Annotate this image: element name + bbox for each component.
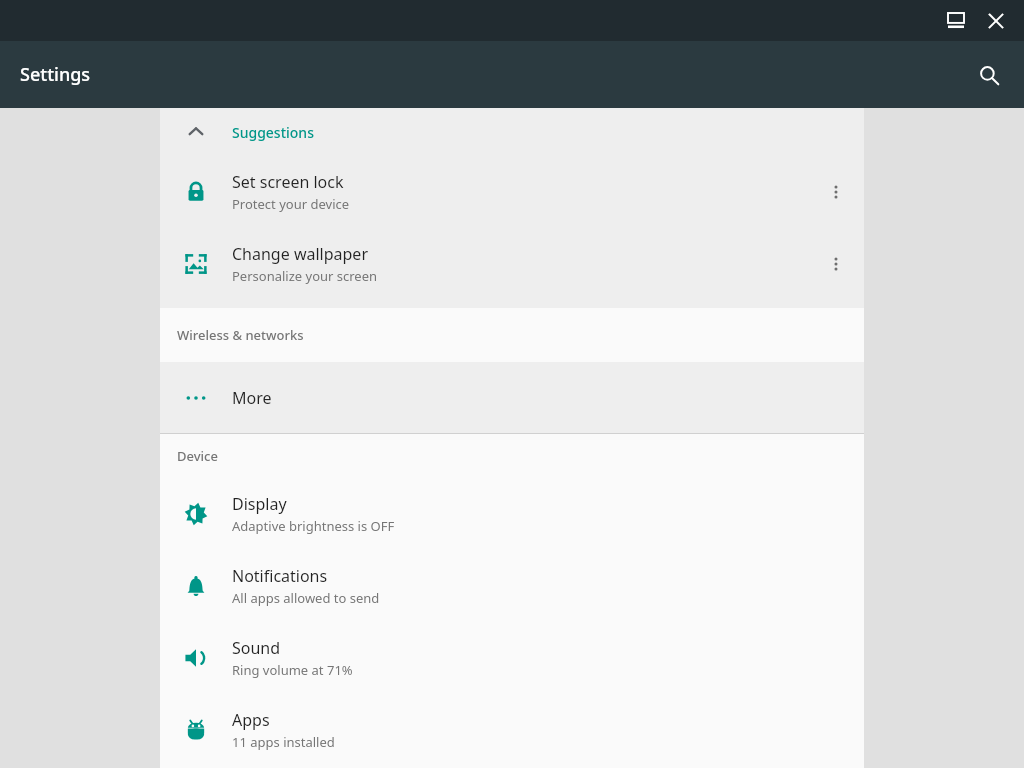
- button[interactable]: Sound: [160, 622, 864, 694]
- button[interactable]: More options for Change wallpaper: [808, 228, 864, 300]
- staticText: Sound: [232, 637, 281, 659]
- button[interactable]: Notifications: [160, 550, 864, 622]
- button[interactable]: Display: [160, 478, 864, 550]
- button[interactable]: Change wallpaper: [160, 228, 864, 300]
- button[interactable]: Close: [976, 1, 1016, 41]
- staticText: Apps: [232, 709, 270, 731]
- staticText: Settings: [20, 62, 91, 87]
- staticText: Ring volume at 71%: [232, 661, 353, 679]
- button[interactable]: Suggestions: [160, 108, 864, 156]
- staticText: Display: [232, 493, 287, 515]
- button[interactable]: Window mode: [936, 1, 976, 41]
- staticText: 11 apps installed: [232, 733, 335, 751]
- staticText: Suggestions: [232, 123, 314, 142]
- staticText: Personalize your screen: [232, 267, 378, 285]
- button[interactable]: More options for Set screen lock: [808, 156, 864, 228]
- button[interactable]: Set screen lock: [160, 156, 864, 228]
- button[interactable]: Apps: [160, 694, 864, 766]
- staticText: Device: [177, 447, 218, 465]
- staticText: Change wallpaper: [232, 243, 368, 265]
- button[interactable]: Search: [967, 53, 1011, 97]
- staticText: All apps allowed to send: [232, 589, 380, 607]
- staticText: Notifications: [232, 565, 328, 587]
- staticText: More: [232, 387, 272, 409]
- staticText: Protect your device: [232, 195, 350, 213]
- staticText: Wireless & networks: [177, 326, 304, 344]
- button[interactable]: More: [160, 362, 864, 433]
- staticText: Set screen lock: [232, 171, 344, 193]
- staticText: Adaptive brightness is OFF: [232, 517, 395, 535]
